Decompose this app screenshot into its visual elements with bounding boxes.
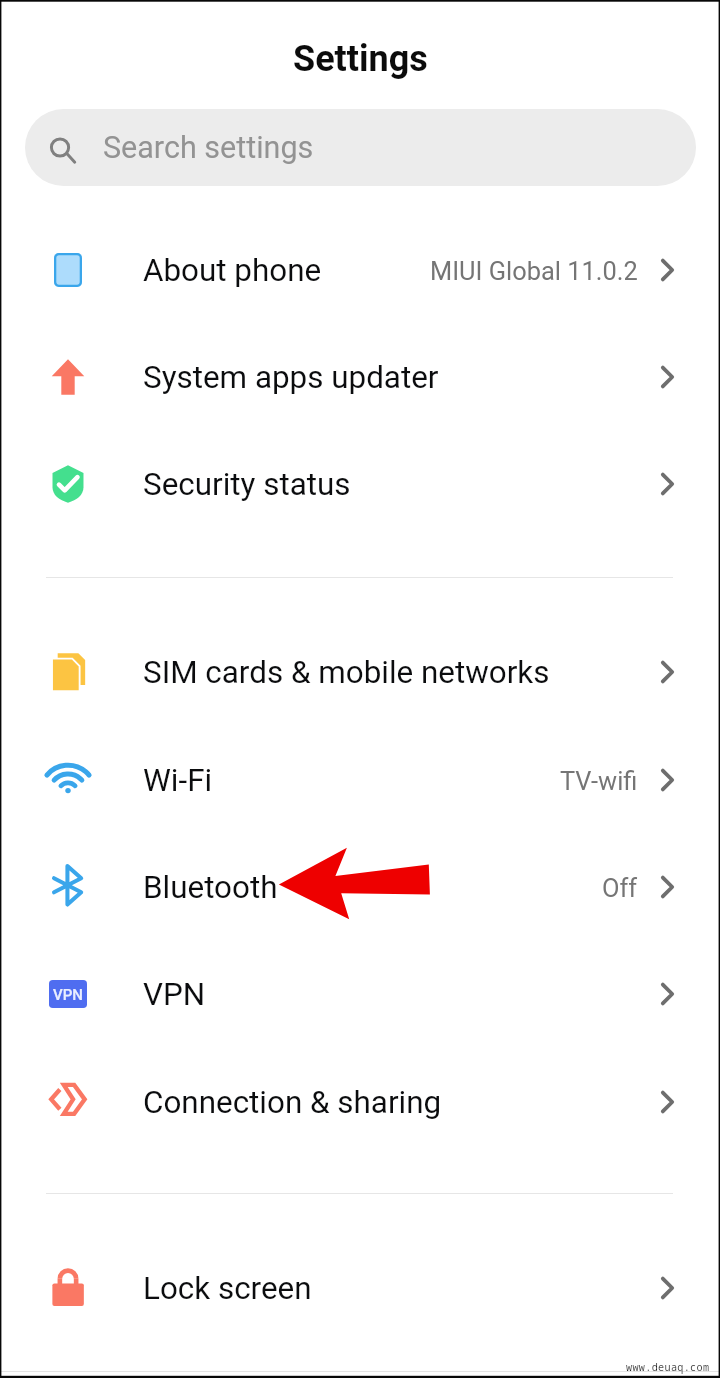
button[interactable]: Security status bbox=[0, 430, 720, 537]
button[interactable]: SIM cards & mobile networks bbox=[0, 618, 720, 725]
staticText: Lock screen bbox=[143, 1270, 312, 1307]
staticText: Off bbox=[602, 873, 638, 903]
staticText: VPN bbox=[53, 986, 83, 1004]
staticText: TV-wifi bbox=[560, 766, 638, 796]
staticText: MIUI Global 11.0.2 bbox=[430, 256, 638, 286]
staticText: Bluetooth bbox=[143, 869, 278, 906]
button[interactable]: Bluetooth bbox=[0, 833, 720, 940]
button[interactable]: Wi-Fi bbox=[0, 726, 720, 833]
button[interactable]: System apps updater bbox=[0, 323, 720, 430]
button[interactable]: Lock screen bbox=[0, 1234, 720, 1341]
button[interactable]: VPN bbox=[0, 940, 720, 1047]
staticText: Search settings bbox=[103, 130, 314, 166]
staticText: Settings bbox=[293, 38, 428, 80]
button[interactable]: Search settings bbox=[25, 109, 696, 186]
staticText: www.deuaq.com bbox=[626, 1360, 710, 1374]
button[interactable]: Connection & sharing bbox=[0, 1048, 720, 1155]
staticText: System apps updater bbox=[143, 359, 439, 396]
staticText: Wi-Fi bbox=[143, 762, 213, 799]
staticText: SIM cards & mobile networks bbox=[143, 654, 550, 691]
staticText: About phone bbox=[143, 252, 322, 289]
staticText: VPN bbox=[143, 976, 206, 1013]
staticText: Connection & sharing bbox=[143, 1084, 442, 1121]
staticText: Security status bbox=[143, 466, 351, 503]
other: Annotation arrow pointing at Bluetooth bbox=[278, 846, 432, 922]
button[interactable]: About phone bbox=[0, 216, 720, 323]
